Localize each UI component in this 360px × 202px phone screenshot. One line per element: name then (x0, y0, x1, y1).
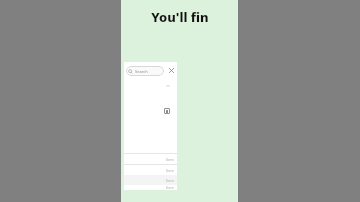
staticText: Item (166, 168, 174, 173)
staticText: Item (166, 157, 174, 162)
button[interactable]: Search (126, 66, 164, 76)
button[interactable]: Close (167, 66, 176, 75)
button[interactable]: Collapse (165, 83, 171, 89)
button[interactable]: Item (124, 175, 177, 185)
button[interactable]: Item (124, 154, 177, 164)
staticText: Item (166, 178, 174, 183)
staticText: Search (135, 69, 148, 74)
button[interactable]: Item (124, 185, 177, 190)
button[interactable]: Layout (163, 107, 171, 115)
button[interactable]: Item (124, 165, 177, 175)
staticText: You'll fin (151, 8, 209, 26)
staticText: Item (166, 185, 174, 190)
